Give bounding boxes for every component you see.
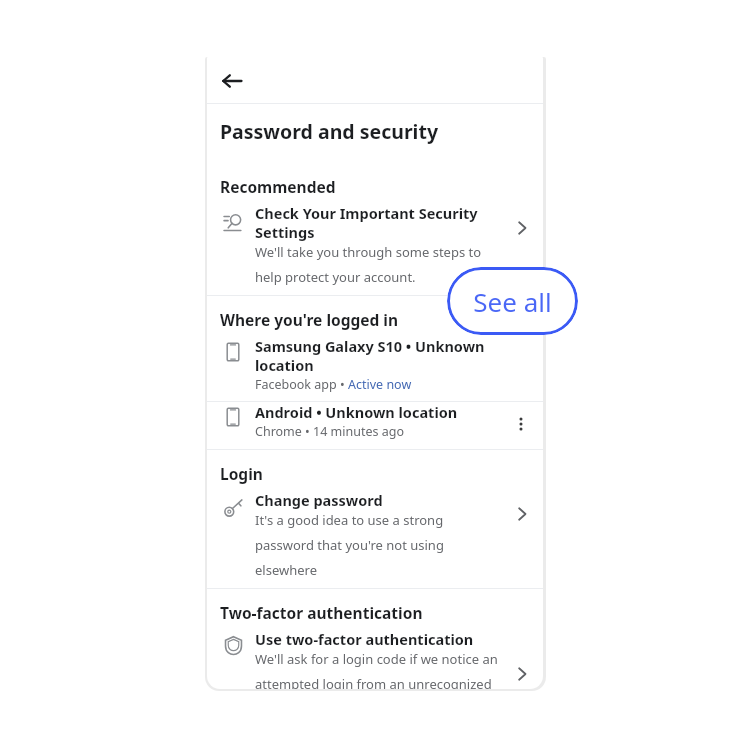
staticText: See all bbox=[473, 284, 552, 319]
staticText: Password and security bbox=[220, 118, 439, 145]
staticText: Android • Unknown location bbox=[255, 402, 458, 422]
button[interactable]: More options bbox=[509, 412, 533, 436]
button[interactable]: Back bbox=[213, 62, 251, 100]
staticText: Facebook app • bbox=[255, 376, 348, 393]
staticText: Where you're logged in bbox=[220, 309, 399, 330]
button[interactable]: Use two-factor authentication bbox=[207, 629, 543, 689]
staticText: Change password bbox=[255, 490, 383, 510]
button[interactable]: Change password bbox=[207, 490, 543, 588]
staticText: We'll take you through some steps to hel… bbox=[255, 243, 505, 285]
button[interactable]: Samsung Galaxy S10 • Unknown location bbox=[207, 336, 543, 401]
staticText: Active now bbox=[348, 376, 412, 393]
staticText: Samsung Galaxy S10 • Unknown location bbox=[255, 336, 505, 375]
staticText: Two-factor authentication bbox=[220, 602, 423, 623]
staticText: It's a good idea to use a strong passwor… bbox=[255, 511, 505, 578]
staticText: Recommended bbox=[220, 176, 336, 197]
button[interactable]: Android • Unknown location bbox=[207, 402, 543, 449]
staticText: Login bbox=[220, 463, 263, 484]
staticText: Use two-factor authentication bbox=[255, 629, 474, 649]
staticText: Chrome • 14 minutes ago bbox=[255, 423, 405, 440]
button[interactable]: Check Your Important Security Settings bbox=[207, 203, 543, 295]
staticText: We'll ask for a login code if we notice … bbox=[255, 650, 505, 689]
staticText: Check Your Important Security Settings bbox=[255, 203, 505, 242]
button[interactable]: See all bbox=[447, 267, 578, 335]
